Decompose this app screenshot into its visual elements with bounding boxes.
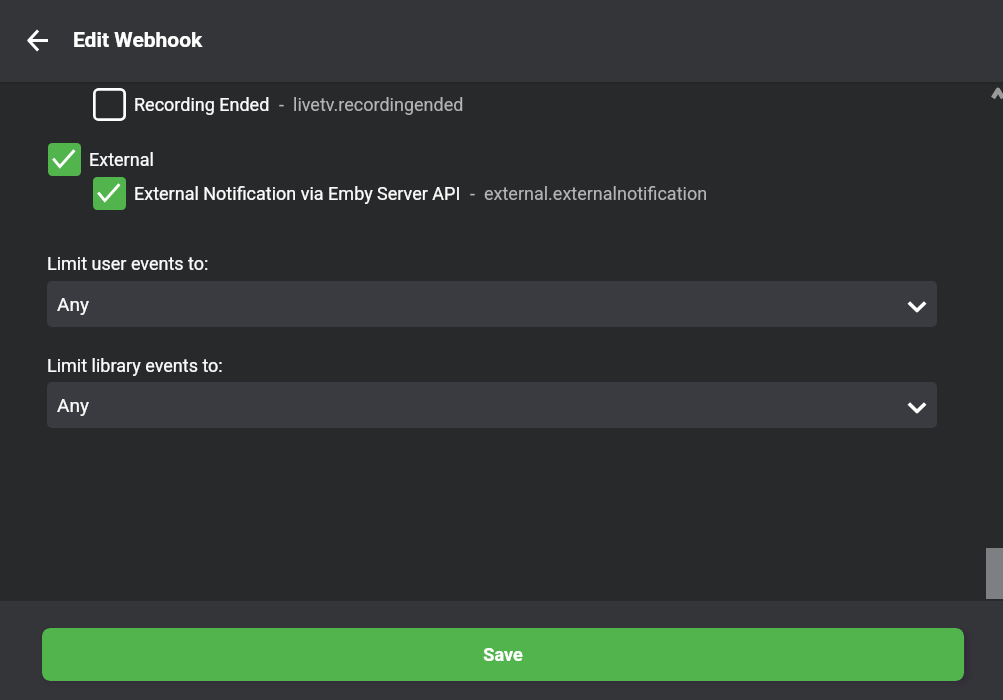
- staticText: -: [470, 183, 475, 204]
- staticText: Edit Webhook: [73, 28, 203, 53]
- staticText: External Notification via Emby Server AP…: [134, 183, 461, 204]
- staticText: External: [89, 149, 154, 170]
- button[interactable]: Recording Ended: [0, 84, 1003, 125]
- staticText: livetv.recordingended: [293, 94, 464, 115]
- staticText: Any: [57, 394, 89, 416]
- staticText: Limit library events to:: [47, 355, 223, 376]
- button[interactable]: External Notification via Emby Server AP…: [0, 173, 1003, 214]
- staticText: Save: [483, 644, 523, 665]
- staticText: -: [279, 94, 284, 115]
- staticText: Any: [57, 293, 89, 315]
- button[interactable]: Save: [42, 628, 964, 681]
- staticText: Limit user events to:: [47, 253, 209, 274]
- button[interactable]: Any: [47, 382, 937, 428]
- button[interactable]: External: [0, 139, 1003, 180]
- staticText: Recording Ended: [134, 94, 270, 115]
- button[interactable]: Back: [14, 16, 61, 64]
- button[interactable]: Any: [47, 281, 937, 327]
- button[interactable]: Scroll up: [984, 85, 1003, 103]
- staticText: external.externalnotification: [484, 183, 708, 204]
